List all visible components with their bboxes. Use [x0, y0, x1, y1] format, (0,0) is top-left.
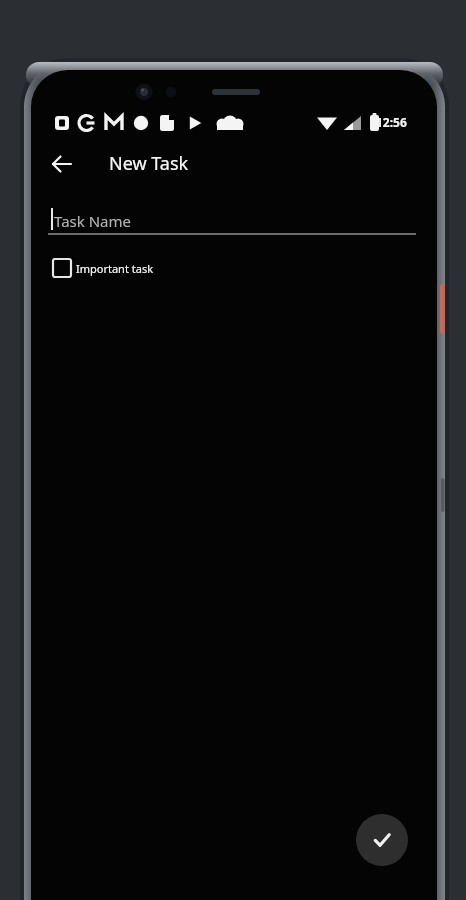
button[interactable]: Task Name [48, 206, 416, 238]
staticText: New Task [109, 151, 189, 176]
staticText: 12:56 [376, 114, 407, 130]
button[interactable]: Back [45, 148, 79, 180]
button[interactable]: Important task [48, 254, 218, 282]
button[interactable]: Save task [356, 814, 408, 866]
staticText: Task Name [54, 211, 131, 231]
staticText: Important task [76, 261, 154, 276]
